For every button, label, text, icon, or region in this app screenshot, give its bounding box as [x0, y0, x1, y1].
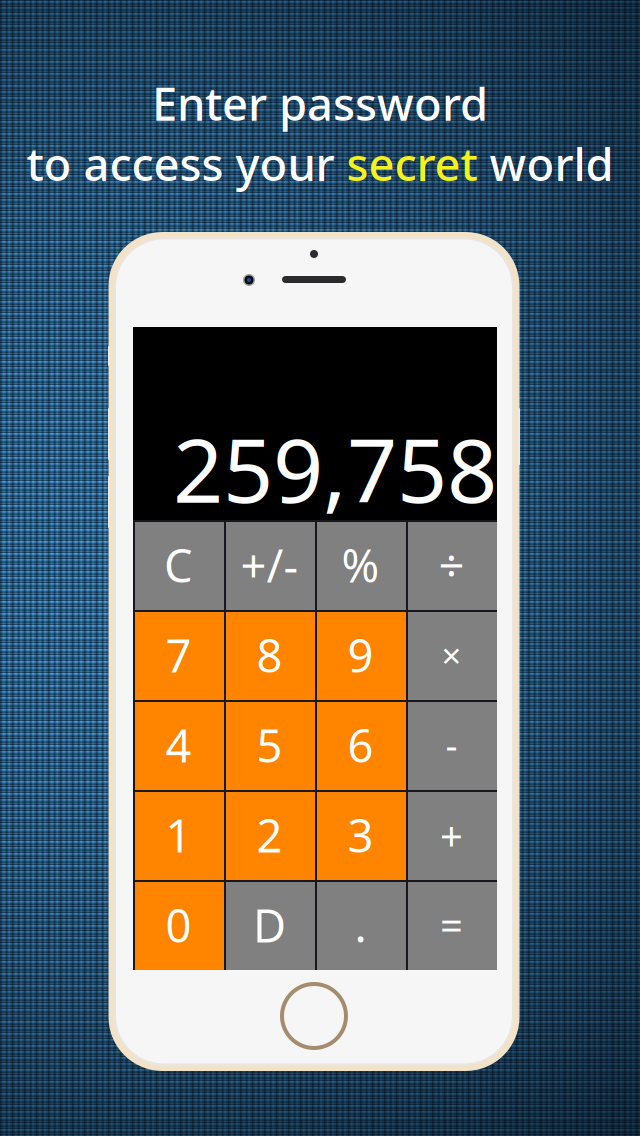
- button[interactable]: 5: [224, 700, 315, 790]
- staticText: 1: [165, 805, 191, 865]
- button[interactable]: C: [133, 520, 224, 610]
- button[interactable]: 2: [224, 790, 315, 880]
- staticText: 4: [165, 715, 191, 775]
- staticText: Enter password: [152, 73, 488, 133]
- staticText: world: [477, 133, 613, 193]
- staticText: %: [341, 535, 379, 595]
- staticText: to access your: [26, 133, 346, 193]
- staticText: -: [445, 720, 457, 770]
- staticText: D: [253, 895, 286, 955]
- staticText: secret: [346, 133, 477, 193]
- staticText: 3: [347, 805, 373, 865]
- staticText: +/-: [240, 535, 298, 595]
- button[interactable]: 1: [133, 790, 224, 880]
- button[interactable]: ÷: [406, 520, 497, 610]
- button[interactable]: +: [406, 790, 497, 880]
- button[interactable]: ×: [406, 610, 497, 700]
- button[interactable]: %: [315, 520, 406, 610]
- button[interactable]: -: [406, 700, 497, 790]
- staticText: =: [440, 898, 463, 951]
- staticText: C: [164, 535, 193, 595]
- staticText: 6: [347, 715, 373, 775]
- staticText: +: [440, 808, 463, 861]
- button[interactable]: 3: [315, 790, 406, 880]
- staticText: ×: [441, 632, 461, 678]
- button[interactable]: 4: [133, 700, 224, 790]
- button[interactable]: 0: [133, 880, 224, 970]
- staticText: 5: [256, 715, 282, 775]
- staticText: 8: [256, 625, 282, 685]
- button[interactable]: 9: [315, 610, 406, 700]
- staticText: 0: [165, 895, 191, 955]
- staticText: 2: [256, 805, 282, 865]
- staticText: .: [354, 895, 366, 955]
- button[interactable]: =: [406, 880, 497, 970]
- button[interactable]: 8: [224, 610, 315, 700]
- staticText: 9: [347, 625, 373, 685]
- button[interactable]: 6: [315, 700, 406, 790]
- staticText: 259,758: [173, 410, 497, 527]
- button[interactable]: .: [315, 880, 406, 970]
- button[interactable]: D: [224, 880, 315, 970]
- staticText: ÷: [438, 535, 464, 595]
- button[interactable]: +/-: [224, 520, 315, 610]
- staticText: 7: [165, 625, 191, 685]
- button[interactable]: 7: [133, 610, 224, 700]
